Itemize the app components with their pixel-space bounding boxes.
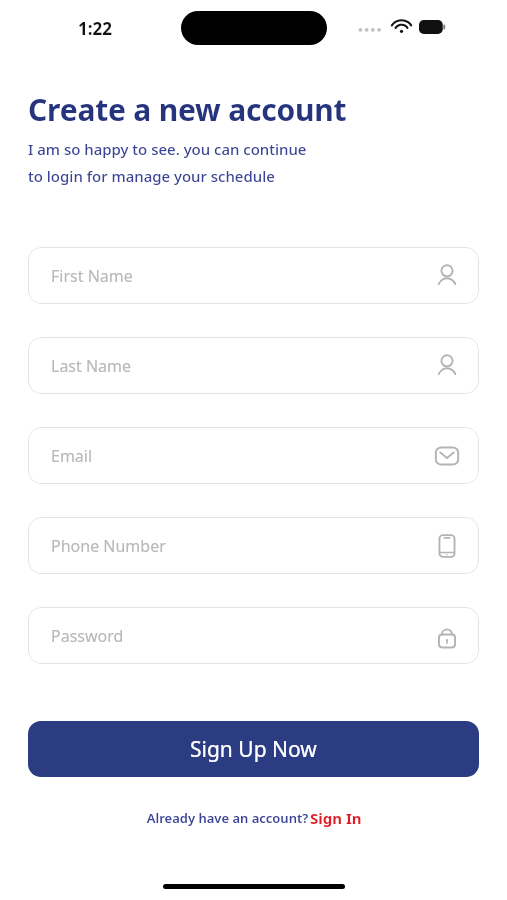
other: Phone number	[434, 533, 460, 559]
button[interactable]: Email	[28, 427, 479, 484]
button[interactable]: Phone Number	[28, 517, 479, 574]
staticText: I am so happy to see. you can continue t…	[28, 139, 307, 187]
button[interactable]: Already have an account?	[141, 805, 366, 831]
button[interactable]: Password	[28, 607, 479, 664]
button[interactable]: Last Name	[28, 337, 479, 394]
staticText: 1:22	[78, 17, 112, 40]
other: Password	[434, 623, 460, 649]
button[interactable]: Sign Up Now	[28, 721, 479, 777]
button[interactable]: First Name	[28, 247, 479, 304]
staticText: Already have an account?	[145, 809, 310, 827]
other: Last name	[434, 353, 460, 379]
staticText: Password	[51, 625, 434, 647]
staticText: Sign In	[310, 808, 362, 828]
other: First name	[434, 263, 460, 289]
staticText: First Name	[51, 265, 434, 287]
staticText: Email	[51, 445, 434, 467]
other: Email	[434, 443, 460, 469]
staticText: Phone Number	[51, 535, 434, 557]
staticText: Last Name	[51, 355, 434, 377]
staticText: Sign Up Now	[190, 735, 317, 764]
staticText: Create a new account	[28, 89, 347, 130]
